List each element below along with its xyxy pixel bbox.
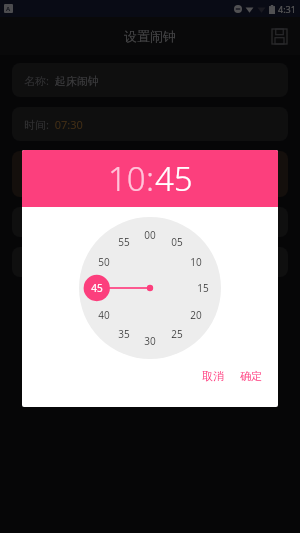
staticText: : — [146, 156, 155, 201]
button[interactable] — [12, 207, 288, 237]
button[interactable]: 10 — [108, 156, 146, 201]
button[interactable]: 确定 — [240, 369, 262, 383]
staticText: 07:30 — [49, 117, 83, 132]
staticText: 20 — [190, 308, 202, 322]
button[interactable] — [12, 151, 288, 197]
staticText: 设置闹钟 — [124, 28, 176, 44]
staticText: 45 — [91, 281, 103, 295]
staticText: 取消 — [202, 369, 224, 383]
button[interactable]: 名称: — [12, 63, 288, 97]
staticText: 35 — [118, 327, 130, 341]
button[interactable]: 45 — [155, 156, 193, 201]
staticText: 40 — [98, 308, 110, 322]
staticText: 名称: — [24, 73, 49, 88]
staticText: 00 — [144, 228, 156, 242]
staticText: 确定 — [240, 369, 262, 383]
staticText: 50 — [98, 255, 110, 269]
button[interactable] — [12, 247, 288, 277]
staticText: 30 — [144, 334, 156, 348]
staticText: 4:31 — [278, 3, 296, 15]
staticText: 15 — [197, 281, 209, 295]
staticText: 25 — [171, 327, 183, 341]
staticText: A — [6, 5, 11, 13]
staticText: 起床闹钟 — [49, 73, 99, 88]
button[interactable]: 取消 — [202, 369, 224, 383]
staticText: 时间: — [24, 117, 49, 132]
button[interactable]: 时间: — [12, 107, 288, 141]
staticText: 10 — [190, 255, 202, 269]
staticText: 55 — [118, 235, 130, 249]
button[interactable]: Save — [266, 23, 292, 49]
staticText: 05 — [171, 235, 183, 249]
